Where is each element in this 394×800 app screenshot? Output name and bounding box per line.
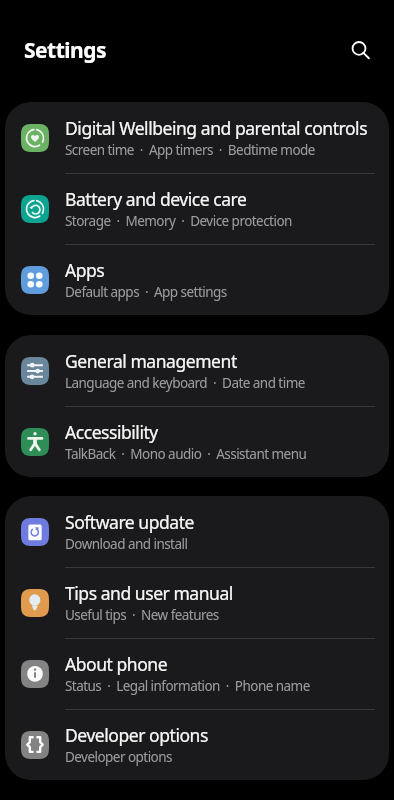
staticText: Accessibility [65,420,158,444]
staticText: Storage · Memory · Device protection [65,212,292,230]
staticText: Language and keyboard · Date and time [65,374,305,392]
staticText: TalkBack · Mono audio · Assistant menu [65,445,307,463]
staticText: Digital Wellbeing and parental controls [65,116,368,140]
button[interactable]: Battery and device care [5,173,389,244]
staticText: Battery and device care [65,187,247,211]
staticText: Developer options [65,723,208,747]
staticText: Developer options [65,748,172,766]
staticText: Software update [65,510,194,534]
button[interactable]: About phone [5,638,389,709]
button[interactable]: Apps [5,244,389,315]
staticText: Status · Legal information · Phone name [65,677,310,695]
button[interactable]: Accessibility [5,406,389,477]
button[interactable]: Software update [5,496,389,567]
staticText: Download and install [65,535,188,553]
button[interactable]: Search [335,27,383,75]
button[interactable]: General management [5,335,389,406]
staticText: Default apps · App settings [65,283,227,301]
staticText: Apps [65,258,105,282]
staticText: General management [65,349,237,373]
button[interactable]: Developer options [5,709,389,780]
staticText: About phone [65,652,168,676]
button[interactable]: Digital Wellbeing and parental controls [5,102,389,173]
staticText: Useful tips · New features [65,606,219,624]
staticText: Settings [24,36,107,65]
staticText: Screen time · App timers · Bedtime mode [65,141,315,159]
staticText: Tips and user manual [65,581,233,605]
button[interactable]: Tips and user manual [5,567,389,638]
